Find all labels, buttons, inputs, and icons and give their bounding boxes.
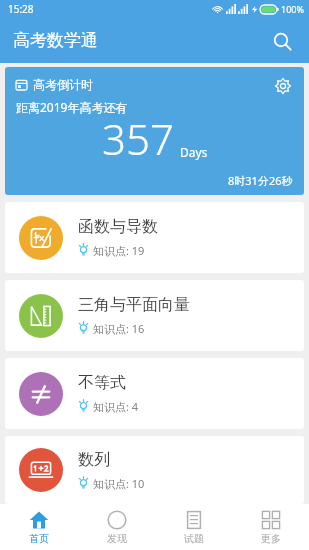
staticText: 函数与导数 bbox=[78, 217, 158, 237]
button[interactable]: 数列 bbox=[5, 436, 304, 504]
button[interactable]: 三角与平面向量 bbox=[5, 280, 304, 351]
staticText: 357 bbox=[102, 110, 174, 167]
staticText: 100% bbox=[281, 3, 304, 15]
staticText: 15:28 bbox=[8, 2, 34, 16]
staticText: 知识点: 16 bbox=[93, 321, 145, 336]
button[interactable]: 首页 bbox=[0, 504, 78, 550]
staticText: 8时31分26秒 bbox=[228, 173, 293, 188]
staticText: 高考倒计时 bbox=[33, 77, 93, 92]
button[interactable]: 不等式 bbox=[5, 358, 304, 429]
staticText: 试题 bbox=[184, 532, 204, 545]
staticText: 发现 bbox=[107, 532, 127, 545]
button[interactable]: 发现 bbox=[78, 504, 155, 550]
staticText: 三角与平面向量 bbox=[78, 295, 190, 315]
button[interactable]: 试题 bbox=[155, 504, 232, 550]
staticText: 不等式 bbox=[78, 373, 126, 393]
button[interactable]: 更多 bbox=[232, 504, 309, 550]
staticText: 高考数学通 bbox=[13, 30, 98, 51]
staticText: 知识点: 19 bbox=[93, 243, 145, 258]
staticText: 知识点: 4 bbox=[93, 399, 139, 414]
button[interactable]: Search bbox=[263, 22, 301, 60]
button[interactable]: Settings bbox=[268, 71, 298, 101]
staticText: 知识点: 10 bbox=[93, 476, 145, 491]
staticText: Days bbox=[180, 144, 208, 160]
button[interactable]: 高考倒计时 bbox=[5, 67, 304, 195]
staticText: 数列 bbox=[78, 450, 110, 470]
button[interactable]: 函数与导数 bbox=[5, 202, 304, 273]
staticText: 更多 bbox=[261, 532, 281, 545]
staticText: 距离2019年高考还有 bbox=[16, 99, 128, 115]
staticText: 首页 bbox=[29, 532, 49, 545]
